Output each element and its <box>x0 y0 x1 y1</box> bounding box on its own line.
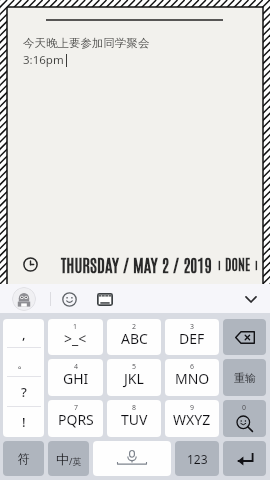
staticText: WXYZ <box>173 410 211 429</box>
button[interactable]: 符 <box>3 441 44 476</box>
button[interactable]: , <box>3 319 44 348</box>
button[interactable]: 。 <box>3 348 44 377</box>
staticText: 4 <box>74 362 79 372</box>
staticText: 7 <box>74 403 79 413</box>
button[interactable]: 7 <box>48 400 103 437</box>
button[interactable]: ? <box>3 377 44 407</box>
staticText: THURSDAY / MAY 2 / 2019 <box>61 253 212 275</box>
button[interactable]: Voice input <box>93 441 171 476</box>
button[interactable]: 6 <box>165 359 219 396</box>
staticText: 中 <box>56 451 69 467</box>
staticText: >_< <box>64 329 87 348</box>
staticText: ABC <box>121 329 148 348</box>
button[interactable]: Backspace <box>223 319 266 355</box>
button[interactable]: 1 <box>48 319 103 355</box>
staticText: I <box>255 257 258 271</box>
staticText: ! <box>22 413 26 431</box>
staticText: 6 <box>190 362 195 372</box>
staticText: 9 <box>190 403 195 413</box>
staticText: 。 <box>17 355 30 371</box>
button[interactable]: 123 <box>175 441 219 476</box>
button[interactable]: 重输 <box>223 359 266 396</box>
staticText: JKL <box>124 369 144 388</box>
staticText: 0 <box>242 403 247 413</box>
staticText: 符 <box>18 451 30 466</box>
button[interactable]: Emoji <box>58 288 80 310</box>
staticText: , <box>22 325 26 343</box>
button[interactable]: Emoji search <box>223 400 266 437</box>
button[interactable]: Keyboard settings <box>94 288 116 310</box>
button[interactable]: Hide keyboard <box>239 287 263 311</box>
staticText: 123 <box>187 451 208 467</box>
staticText: ? <box>21 383 27 401</box>
button[interactable]: 5 <box>107 359 161 396</box>
button[interactable]: 9 <box>165 400 219 437</box>
staticText: 2 <box>132 322 137 332</box>
staticText: PQRS <box>58 410 94 429</box>
staticText: GHI <box>63 369 89 388</box>
staticText: 3 <box>190 322 195 332</box>
button[interactable]: ! <box>3 407 44 437</box>
staticText: 3:16pm <box>23 52 64 68</box>
button[interactable]: DONE <box>225 255 251 273</box>
staticText: 1 <box>73 322 78 332</box>
staticText: 重输 <box>234 371 256 385</box>
button[interactable]: Assistant <box>12 287 36 311</box>
button[interactable]: 中 <box>48 441 89 476</box>
staticText: 8 <box>132 403 137 413</box>
staticText: 今天晚上要参加同学聚会 <box>23 36 150 50</box>
staticText: 5 <box>132 362 137 372</box>
staticText: MNO <box>175 369 210 388</box>
staticText: DEF <box>179 329 205 348</box>
button[interactable]: Enter <box>223 441 266 476</box>
button[interactable]: 4 <box>48 359 103 396</box>
staticText: /英 <box>69 455 82 467</box>
button[interactable]: 3 <box>165 319 219 355</box>
staticText: TUV <box>121 410 148 429</box>
staticText: I <box>218 257 221 271</box>
button[interactable]: 2 <box>107 319 161 355</box>
button[interactable]: 8 <box>107 400 161 437</box>
